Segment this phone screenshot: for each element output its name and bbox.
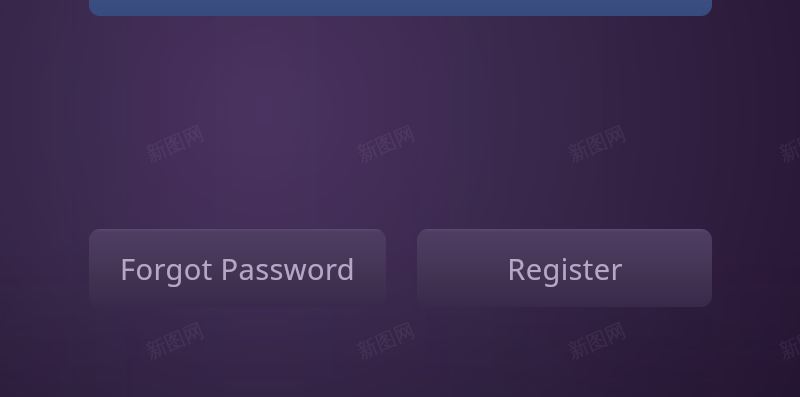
button[interactable]: Forgot Password <box>89 229 386 307</box>
button[interactable]: Login <box>89 0 712 16</box>
staticText: Forgot Password <box>120 249 355 288</box>
staticText: Register <box>507 249 623 288</box>
button[interactable]: Register <box>417 229 712 307</box>
